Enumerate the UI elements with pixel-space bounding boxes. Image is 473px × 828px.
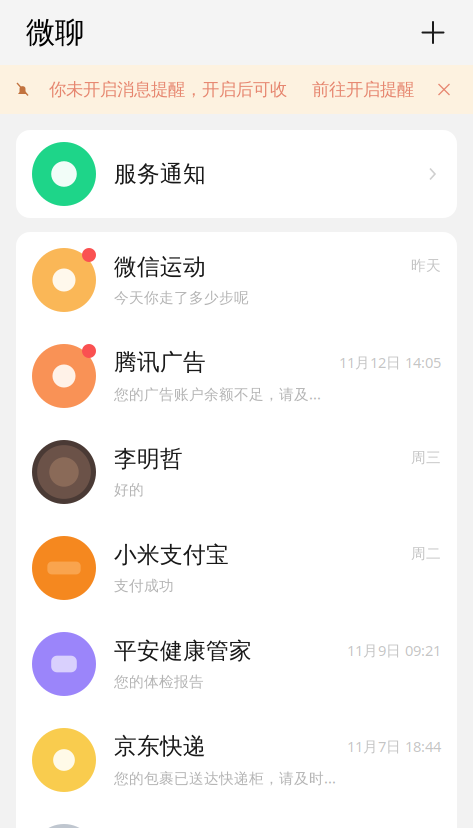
staticText: 服务通知 — [114, 160, 206, 188]
button[interactable]: 腾讯广告 — [16, 328, 457, 424]
button[interactable]: 平安健康管家 — [16, 616, 457, 712]
button[interactable]: Dismiss notice — [414, 81, 452, 97]
staticText: 微信运动 — [114, 253, 206, 281]
staticText: 昨天 — [411, 256, 441, 274]
staticText: 周三 — [411, 448, 441, 466]
staticText: 京东快递 — [114, 732, 206, 760]
staticText: 您的包裹已送达快递柜，请及时取件 — [114, 768, 337, 788]
staticText: 李明哲 — [114, 445, 183, 473]
staticText: 你未开启消息提醒，开启后可收 — [49, 79, 287, 100]
staticText: 今天你走了多少步呢 — [114, 289, 249, 307]
button[interactable]: 李明哲 — [16, 424, 457, 520]
button[interactable]: 京东快递 — [16, 712, 457, 808]
staticText: 支付成功 — [114, 577, 174, 595]
button[interactable]: 订阅号消息 — [16, 808, 457, 828]
button[interactable]: 微信运动 — [16, 232, 457, 328]
staticText: 11月7日 18:44 — [347, 736, 441, 756]
staticText: 好的 — [114, 481, 144, 499]
staticText: 11月9日 09:21 — [347, 640, 441, 660]
staticText: 腾讯广告 — [114, 348, 206, 376]
staticText: 微聊 — [26, 14, 84, 50]
button[interactable]: New chat — [415, 18, 451, 46]
staticText: 平安健康管家 — [114, 637, 252, 665]
staticText: 您的广告账户余额不足，请及时充值 … — [114, 384, 329, 404]
staticText: 小米支付宝 — [114, 541, 229, 569]
button[interactable]: 小米支付宝 — [16, 520, 457, 616]
staticText: 您的体检报告 — [114, 673, 204, 691]
staticText: 前往开启提醒 — [312, 79, 414, 100]
staticText: 11月12日 14:05 — [339, 352, 441, 372]
button[interactable]: 服务通知 — [16, 130, 457, 218]
staticText: 周二 — [411, 544, 441, 562]
